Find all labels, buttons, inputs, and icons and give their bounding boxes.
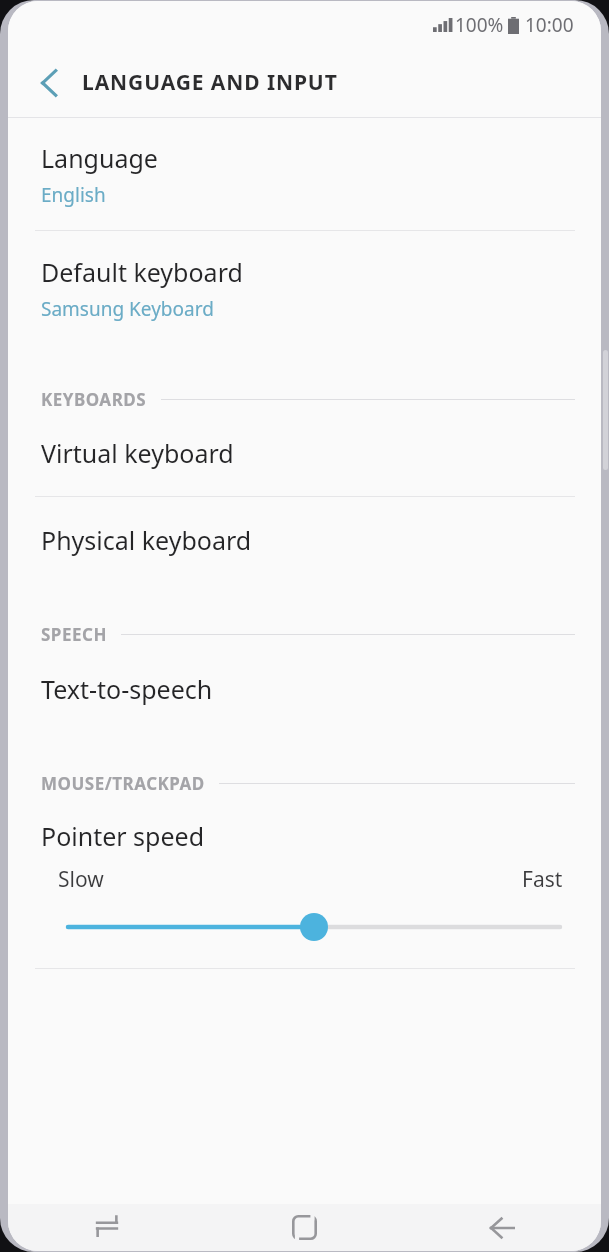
staticText: Pointer speed: [41, 819, 205, 853]
staticText: MOUSE/TRACKPAD: [41, 772, 205, 795]
staticText: Samsung Keyboard: [41, 296, 214, 322]
staticText: Default keyboard: [41, 255, 243, 289]
staticText: LANGUAGE AND INPUT: [82, 68, 338, 97]
staticText: KEYBOARDS: [41, 388, 147, 411]
button[interactable]: Pointer speed slider: [41, 912, 577, 942]
staticText: Language: [41, 141, 158, 175]
staticText: 10:00: [525, 12, 574, 38]
staticText: Slow: [58, 865, 104, 894]
staticText: Fast: [522, 865, 563, 894]
button[interactable]: Recents: [8, 1204, 205, 1251]
staticText: Virtual keyboard: [41, 436, 234, 470]
button[interactable]: Pointer speed: [8, 795, 601, 968]
staticText: 100%: [455, 12, 504, 38]
staticText: Text-to-speech: [41, 672, 213, 706]
button[interactable]: Virtual keyboard: [8, 411, 601, 496]
button[interactable]: Language: [8, 118, 601, 230]
button[interactable]: Back: [403, 1204, 601, 1251]
button[interactable]: Physical keyboard: [8, 497, 601, 583]
button[interactable]: Default keyboard: [8, 231, 601, 346]
staticText: English: [41, 182, 106, 208]
button[interactable]: Home: [205, 1204, 403, 1251]
staticText: SPEECH: [41, 623, 107, 646]
staticText: Physical keyboard: [41, 523, 252, 557]
button[interactable]: Text-to-speech: [8, 646, 601, 732]
button[interactable]: Back: [22, 56, 76, 110]
